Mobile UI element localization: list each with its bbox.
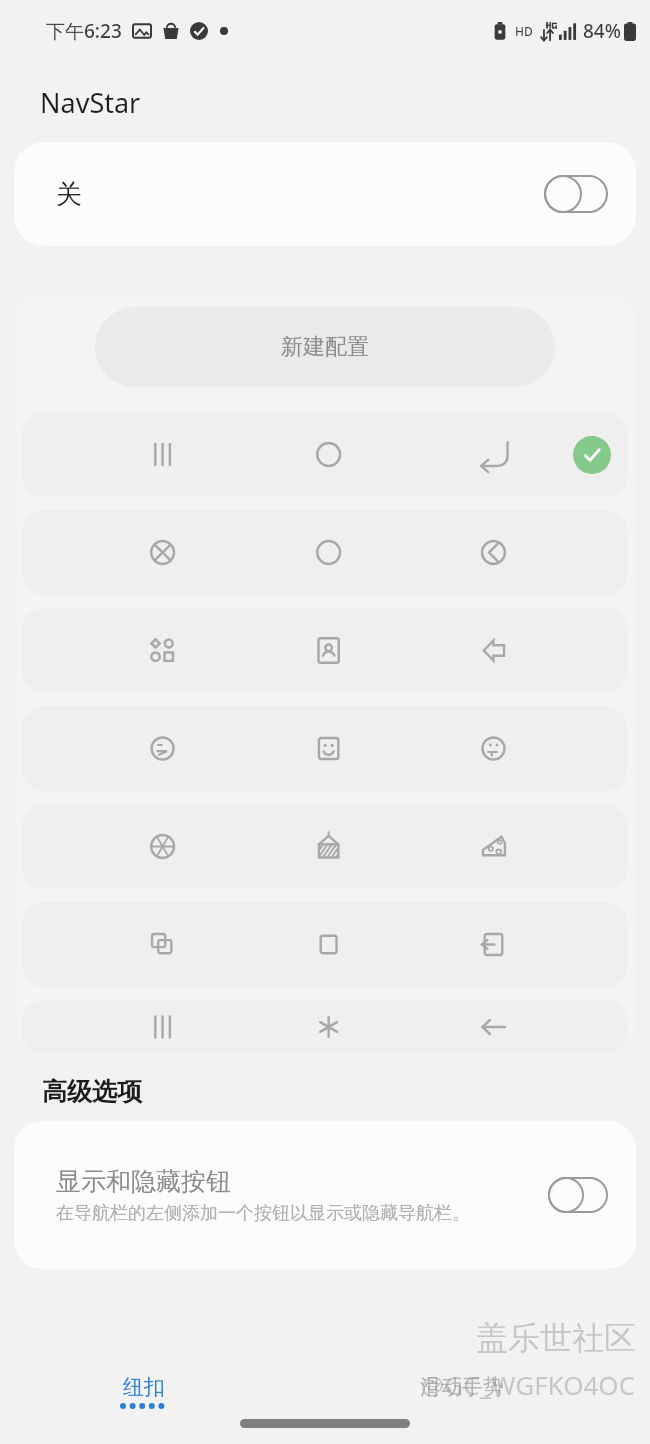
staticText: 84%	[583, 18, 621, 44]
button[interactable]: Navigation bar preset	[22, 804, 628, 889]
staticText: 在导航栏的左侧添加一个按钮以显示或隐藏导航栏。	[56, 1202, 470, 1225]
button[interactable]: Selected	[573, 436, 611, 474]
staticText: 关	[56, 178, 82, 211]
staticText: 纽扣	[123, 1374, 165, 1400]
button[interactable]: Navigation bar preset	[22, 902, 628, 987]
button[interactable]: 新建配置	[95, 307, 555, 387]
staticText: 新建配置	[281, 333, 369, 361]
button[interactable]: Navigation bar preset	[22, 510, 628, 595]
staticText: 滑动手势	[420, 1374, 504, 1400]
staticText: 下午6:23	[46, 18, 122, 44]
button[interactable]: Navigation bar preset	[22, 608, 628, 693]
button[interactable]: 显示和隐藏按钮	[14, 1121, 636, 1269]
button[interactable]: Toggle NavStar	[544, 175, 608, 213]
staticText: HD	[515, 23, 533, 39]
staticText: 盖乐世社区	[476, 1318, 636, 1358]
button[interactable]: 滑动手势	[420, 1374, 504, 1400]
staticText: NavStar	[40, 84, 141, 121]
staticText: @GC_WGFKO4OC	[421, 1367, 636, 1402]
button[interactable]: 纽扣	[120, 1374, 168, 1409]
staticText: 显示和隐藏按钮	[56, 1166, 231, 1197]
button[interactable]: Navigation bar preset	[22, 1000, 628, 1054]
button[interactable]: Navigation bar preset	[22, 706, 628, 791]
staticText: 高级选项	[42, 1076, 142, 1107]
button[interactable]: Navigation bar preset	[22, 412, 628, 497]
button[interactable]: 关	[14, 142, 636, 246]
button[interactable]: Toggle show and hide button	[548, 1177, 608, 1213]
